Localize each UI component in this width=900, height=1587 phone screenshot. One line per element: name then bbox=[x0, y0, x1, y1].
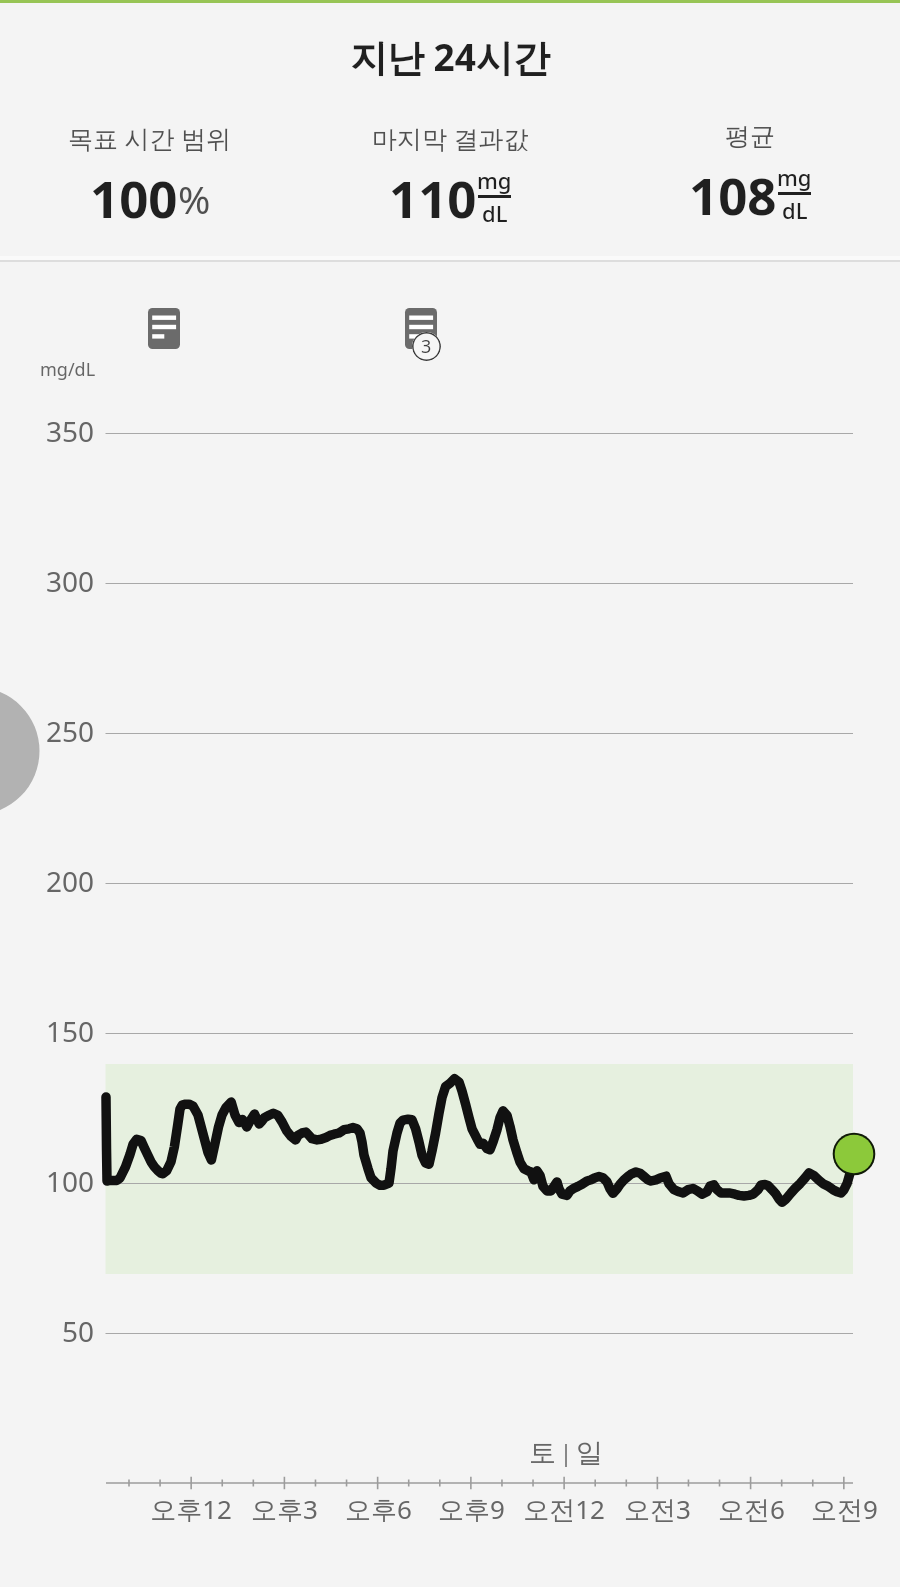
staticText: 목표 시간 범위 bbox=[68, 121, 232, 155]
staticText: 지난 24시간 bbox=[350, 31, 550, 82]
staticText: 오전12 bbox=[523, 1491, 605, 1527]
button[interactable]: 평균 bbox=[600, 121, 900, 229]
staticText: 오전3 bbox=[624, 1491, 691, 1527]
staticText: 250 bbox=[45, 712, 94, 750]
staticText: 108 bbox=[689, 160, 777, 229]
staticText: 마지막 결과값 bbox=[372, 121, 529, 155]
staticText: 오후9 bbox=[438, 1491, 505, 1527]
staticText: % bbox=[178, 172, 211, 225]
staticText: 오후6 bbox=[345, 1491, 412, 1527]
staticText: 오후3 bbox=[251, 1491, 318, 1527]
staticText: 300 bbox=[45, 562, 94, 600]
button[interactable]: 목표 시간 범위 bbox=[0, 121, 300, 232]
staticText: 토 bbox=[529, 1436, 556, 1470]
staticText: 150 bbox=[45, 1012, 94, 1050]
staticText: 오후12 bbox=[150, 1491, 232, 1527]
staticText: mg/dL bbox=[40, 357, 96, 382]
staticText: 350 bbox=[45, 412, 94, 450]
staticText: dL bbox=[782, 195, 808, 225]
staticText: dL bbox=[482, 198, 508, 228]
staticText: mg bbox=[777, 162, 812, 192]
staticText: 200 bbox=[45, 862, 94, 900]
staticText: 3 bbox=[421, 334, 432, 359]
staticText: 평균 bbox=[725, 121, 775, 152]
staticText: 110 bbox=[389, 163, 477, 232]
button[interactable]: Scroll chart backwards bbox=[0, 692, 40, 810]
button[interactable]: Note bbox=[142, 306, 186, 350]
staticText: 일 bbox=[576, 1436, 603, 1470]
staticText: 오전9 bbox=[811, 1491, 878, 1527]
staticText: 100 bbox=[45, 1162, 94, 1200]
staticText: 100 bbox=[90, 163, 178, 232]
button[interactable]: 마지막 결과값 bbox=[300, 121, 600, 232]
staticText: 오전6 bbox=[718, 1491, 785, 1527]
button[interactable]: Notes, 3 entries bbox=[399, 306, 443, 350]
staticText: mg bbox=[477, 165, 512, 195]
staticText: 50 bbox=[61, 1312, 94, 1350]
